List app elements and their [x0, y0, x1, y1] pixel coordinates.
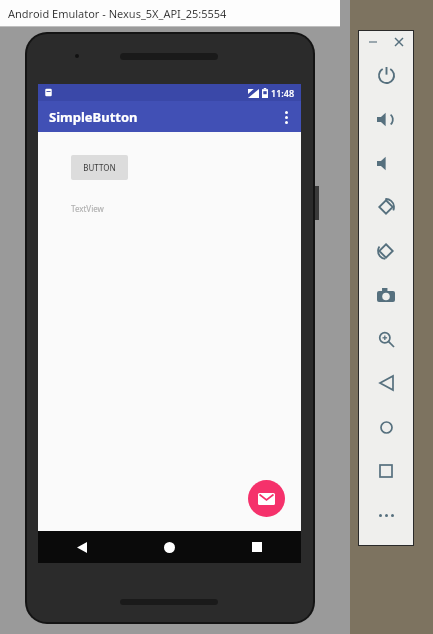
button[interactable]: Back	[38, 531, 125, 563]
button[interactable]: Recent apps	[359, 449, 413, 493]
staticText: SimpleButton	[49, 108, 138, 126]
button[interactable]: Rotate left	[359, 185, 413, 229]
button[interactable]: Home	[359, 405, 413, 449]
button[interactable]: More options	[271, 102, 301, 132]
button[interactable]: Power	[359, 53, 413, 97]
button[interactable]: Compose email	[248, 480, 285, 517]
button[interactable]: BUTTON	[71, 155, 128, 180]
staticText: BUTTON	[83, 162, 116, 173]
button[interactable]: Close	[390, 33, 408, 51]
button[interactable]: Zoom	[359, 317, 413, 361]
button[interactable]: Recent apps	[213, 531, 301, 563]
button[interactable]: Take screenshot	[359, 273, 413, 317]
staticText: TextView	[71, 203, 104, 214]
button[interactable]: Rotate right	[359, 229, 413, 273]
button[interactable]: Volume up	[359, 97, 413, 141]
staticText: 11:48	[271, 87, 295, 99]
button[interactable]: Home	[125, 531, 213, 563]
staticText: Android Emulator - Nexus_5X_API_25:5554	[8, 6, 227, 21]
button[interactable]: More	[359, 493, 413, 537]
button[interactable]: Minimize	[364, 33, 382, 51]
button[interactable]: Volume down	[359, 141, 413, 185]
button[interactable]: Back	[359, 361, 413, 405]
